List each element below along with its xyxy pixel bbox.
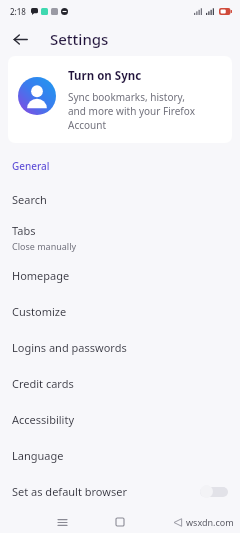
staticText: Settings — [50, 29, 109, 49]
staticText: Set as default browser — [12, 484, 127, 499]
staticText: Language — [12, 448, 64, 463]
staticText: 2:18 — [10, 6, 26, 17]
button[interactable]: Accessibility — [0, 401, 240, 437]
button[interactable]: Search — [0, 181, 240, 217]
staticText: Credit cards — [12, 376, 74, 391]
button[interactable]: Back — [168, 512, 188, 532]
button[interactable]: Turn on Sync — [8, 56, 232, 143]
button[interactable]: Customize — [0, 293, 240, 329]
button[interactable]: Logins and passwords — [0, 329, 240, 365]
button[interactable]: Set as default browser — [0, 473, 240, 509]
staticText: General — [12, 159, 50, 173]
button[interactable]: Homepage — [0, 257, 240, 293]
staticText: Close manually — [12, 240, 77, 252]
button[interactable]: Home — [110, 512, 130, 532]
staticText: Logins and passwords — [12, 340, 127, 355]
button[interactable]: Toggle — [200, 485, 228, 498]
staticText: Sync bookmarks, history, and more with y… — [68, 90, 195, 132]
button[interactable]: Back — [6, 25, 34, 53]
staticText: Search — [12, 192, 47, 207]
staticText: wsxdn.com — [186, 516, 234, 528]
staticText: Tabs — [12, 223, 36, 238]
button[interactable]: Language — [0, 437, 240, 473]
button[interactable]: Recent apps — [52, 512, 72, 532]
staticText: Homepage — [12, 268, 70, 283]
button[interactable]: Credit cards — [0, 365, 240, 401]
staticText: Turn on Sync — [68, 68, 142, 84]
staticText: Customize — [12, 304, 67, 319]
staticText: Accessibility — [12, 412, 75, 427]
button[interactable]: Tabs — [0, 217, 240, 257]
